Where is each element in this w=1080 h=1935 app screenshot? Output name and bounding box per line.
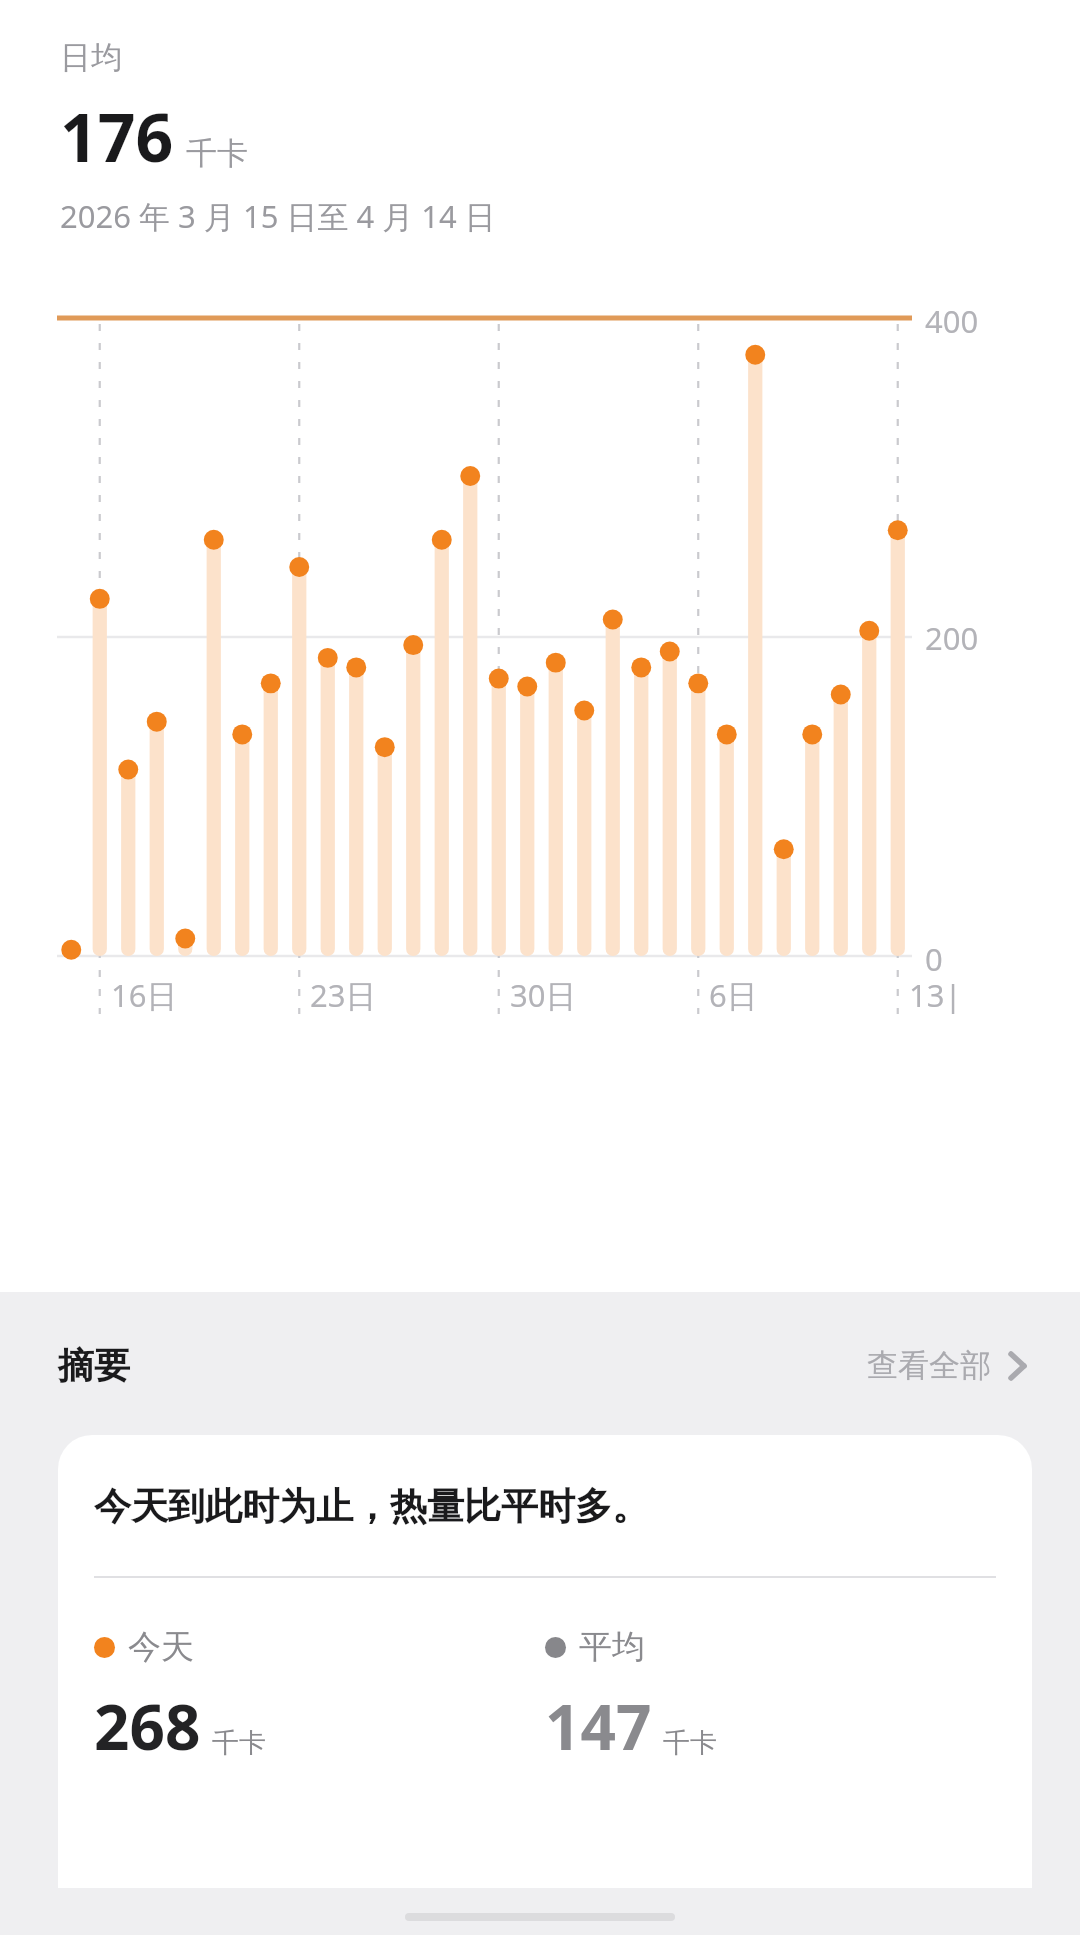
staticText: 千卡	[186, 134, 248, 173]
staticText: 400	[925, 300, 979, 342]
staticText: 16日	[111, 974, 178, 1016]
button[interactable]: 今天到此时为止，热量比平时多。	[58, 1435, 1032, 1888]
staticText: 摘要	[58, 1343, 130, 1388]
staticText: 13|	[909, 974, 962, 1016]
staticText: 今天	[128, 1626, 194, 1668]
staticText: 23日	[310, 974, 377, 1016]
staticText: 147	[545, 1684, 652, 1768]
staticText: 平均	[579, 1626, 645, 1668]
button[interactable]: 查看全部	[861, 1338, 1032, 1393]
staticText: 176	[60, 91, 174, 181]
other: View all	[1009, 1351, 1026, 1381]
staticText: 千卡	[663, 1726, 717, 1760]
staticText: 30日	[510, 974, 577, 1016]
staticText: 0	[925, 938, 943, 980]
staticText: 2026 年 3 月 15 日至 4 月 14 日	[60, 195, 496, 237]
staticText: 6日	[709, 974, 758, 1016]
staticText: 日均	[60, 38, 122, 77]
staticText: 268	[94, 1684, 201, 1768]
staticText: 千卡	[212, 1726, 266, 1760]
staticText: 200	[925, 617, 979, 659]
staticText: 今天到此时为止，热量比平时多。	[94, 1483, 649, 1530]
staticText: 查看全部	[867, 1346, 991, 1385]
